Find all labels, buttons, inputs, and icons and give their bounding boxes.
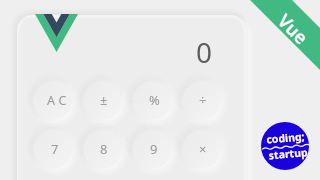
button[interactable]: 8 xyxy=(83,130,121,168)
staticText: 9 xyxy=(150,140,158,158)
button[interactable]: × xyxy=(182,130,220,168)
button[interactable]: 9 xyxy=(133,130,171,168)
button[interactable]: AC xyxy=(34,81,72,119)
button[interactable]: coding startup logo xyxy=(261,122,309,170)
button[interactable]: 7 xyxy=(34,130,72,168)
staticText: Vue xyxy=(272,9,314,50)
staticText: 7 xyxy=(51,140,59,158)
button[interactable]: ÷ xyxy=(182,81,220,119)
staticText: ÷ xyxy=(199,91,207,109)
button[interactable]: % xyxy=(133,81,171,119)
staticText: 8 xyxy=(100,140,108,158)
staticText: × xyxy=(199,140,207,158)
staticText: ± xyxy=(100,91,108,109)
staticText: % xyxy=(149,91,160,109)
staticText: coding; xyxy=(266,129,306,146)
staticText: startup xyxy=(268,145,308,162)
staticText: 0 xyxy=(196,33,213,71)
button[interactable]: ± xyxy=(83,81,121,119)
staticText: AC xyxy=(47,92,71,109)
